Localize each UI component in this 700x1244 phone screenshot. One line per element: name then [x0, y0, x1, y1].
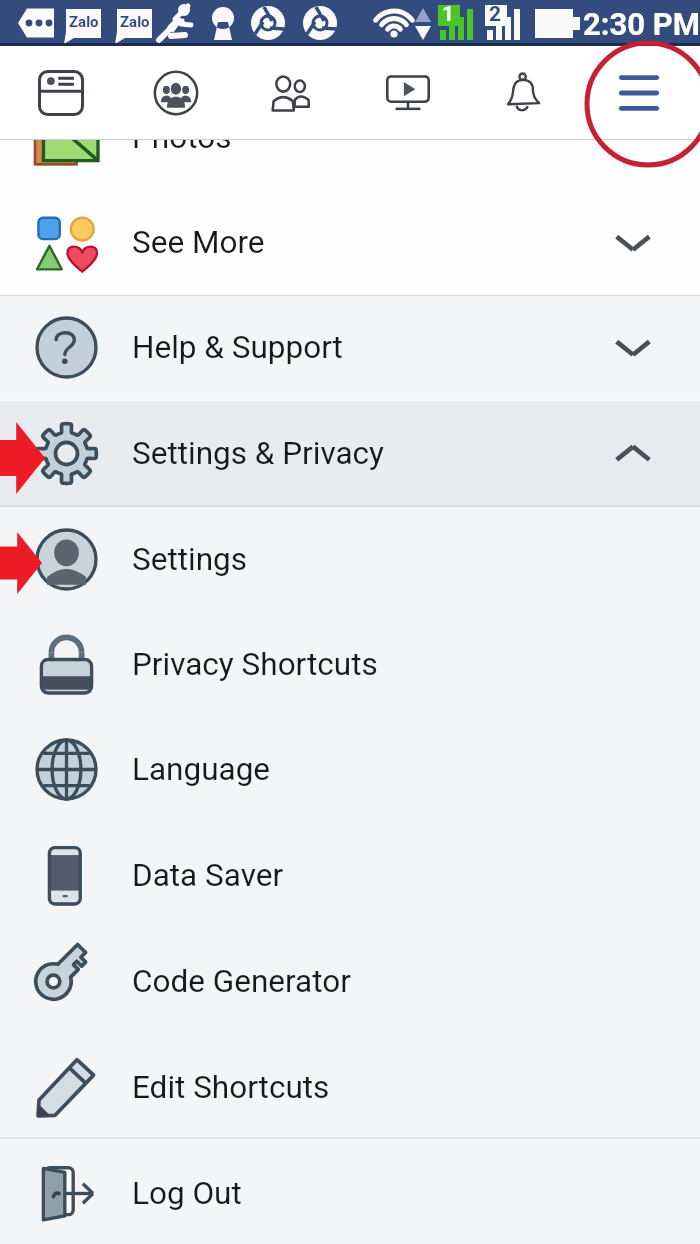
button[interactable]: Notifications	[469, 46, 579, 139]
staticText: Help & Support	[132, 329, 343, 366]
button[interactable]: News Feed	[6, 46, 116, 139]
staticText: Data Saver	[132, 857, 284, 894]
staticText: Photos	[132, 119, 232, 156]
button[interactable]: Photos	[0, 85, 700, 190]
button[interactable]: Groups	[121, 46, 231, 139]
staticText: Edit Shortcuts	[132, 1069, 330, 1106]
button[interactable]: Menu	[584, 46, 694, 139]
staticText: See More	[132, 224, 265, 261]
button[interactable]: Privacy Shortcuts	[0, 612, 700, 717]
button[interactable]: Code Generator	[0, 928, 700, 1034]
staticText: Code Generator	[132, 963, 351, 1000]
staticText: Settings & Privacy	[132, 435, 384, 472]
staticText: Settings	[132, 541, 248, 578]
button[interactable]: Watch	[353, 46, 463, 139]
staticText: Language	[132, 751, 271, 788]
staticText: Zalo	[120, 13, 150, 31]
staticText: Zalo	[69, 13, 99, 31]
button[interactable]: Settings	[0, 506, 700, 612]
staticText: 2	[489, 2, 502, 27]
button[interactable]: Edit Shortcuts	[0, 1034, 700, 1140]
button[interactable]: Help & Support	[0, 295, 700, 400]
button[interactable]: Friends	[237, 46, 347, 139]
button[interactable]: See More	[0, 190, 700, 295]
staticText: 1	[442, 2, 455, 27]
button[interactable]: Data Saver	[0, 822, 700, 928]
button[interactable]: Log Out	[0, 1140, 700, 1244]
staticText: 2:30 PM	[583, 6, 700, 42]
staticText: Log Out	[132, 1175, 242, 1212]
staticText: Privacy Shortcuts	[132, 646, 378, 683]
button[interactable]: Settings & Privacy	[0, 400, 700, 506]
button[interactable]: Language	[0, 717, 700, 822]
